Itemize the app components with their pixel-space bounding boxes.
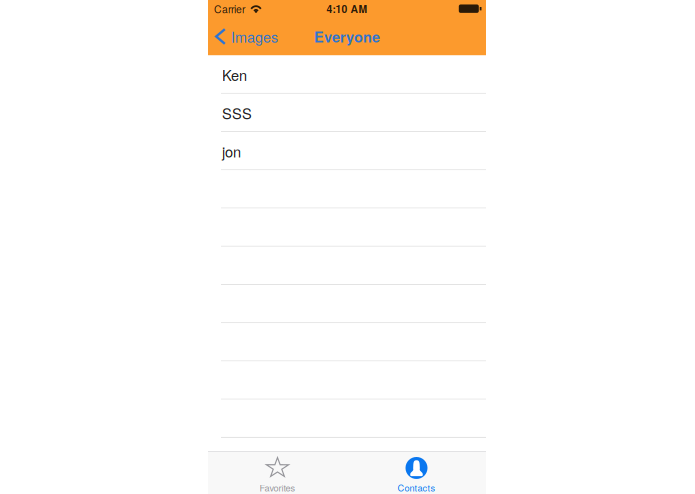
staticText: Ken — [222, 64, 247, 85]
staticText: jon — [222, 141, 241, 162]
staticText: SSS — [222, 102, 252, 123]
button[interactable]: SSS — [208, 94, 486, 132]
button[interactable] — [208, 247, 486, 285]
button[interactable]: Images — [208, 17, 286, 56]
button[interactable]: Contacts — [347, 452, 486, 494]
staticText: Carrier — [214, 1, 245, 16]
button[interactable]: Ken — [208, 56, 486, 94]
staticText: Images — [231, 26, 278, 47]
button[interactable]: jon — [208, 132, 486, 170]
staticText: Favorites — [259, 481, 295, 494]
staticText: 4:10 AM — [326, 1, 367, 16]
button[interactable] — [208, 400, 486, 438]
button[interactable]: Favorites — [208, 452, 347, 494]
staticText: Contacts — [397, 481, 435, 494]
staticText: Everyone — [314, 26, 380, 47]
button[interactable] — [208, 285, 486, 323]
